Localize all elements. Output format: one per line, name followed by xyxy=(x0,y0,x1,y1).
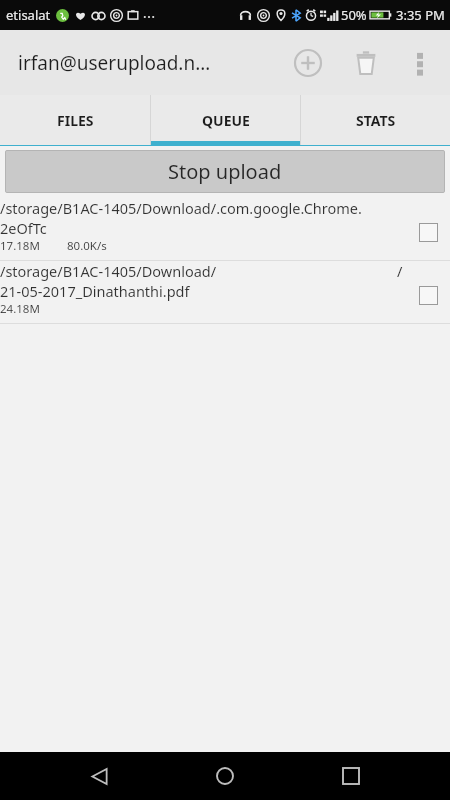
button[interactable]: Select item xyxy=(406,261,450,323)
staticText: irfan@userupload.n… xyxy=(18,50,211,76)
button[interactable]: Stop upload xyxy=(5,150,445,193)
staticText: FILES xyxy=(57,111,94,130)
staticText: STATS xyxy=(356,111,396,130)
staticText: etisalat xyxy=(6,6,51,24)
button[interactable]: Home xyxy=(198,752,252,800)
staticText: 17.18M xyxy=(0,238,40,254)
button[interactable]: Delete xyxy=(342,39,390,87)
staticText: Stop upload xyxy=(168,158,282,185)
staticText: 80.0K/s xyxy=(67,238,107,254)
button[interactable]: STATS xyxy=(301,95,450,145)
staticText: 21-05-2017_Dinathanthi.pdf xyxy=(0,281,190,301)
staticText: /storage/B1AC-1405/Download/ xyxy=(0,261,397,281)
staticText: /storage/B1AC-1405/Download/.com.google.… xyxy=(0,198,406,218)
button[interactable]: Back xyxy=(72,752,126,800)
staticText: 3:35 PM xyxy=(396,6,445,24)
button[interactable]: More options xyxy=(396,39,444,87)
button[interactable]: /storage/B1AC-1405/Download/.com.google.… xyxy=(0,198,450,260)
button[interactable]: /storage/B1AC-1405/Download/ xyxy=(0,261,450,323)
staticText: QUEUE xyxy=(202,111,250,130)
button[interactable]: QUEUE xyxy=(151,95,300,145)
button[interactable]: Select item xyxy=(406,198,450,260)
staticText: / xyxy=(397,261,403,281)
button[interactable]: Add upload xyxy=(284,39,332,87)
staticText: 2eOfTc xyxy=(0,218,47,238)
staticText: 50% xyxy=(341,6,367,24)
button[interactable]: FILES xyxy=(0,95,150,145)
staticText: 24.18M xyxy=(0,301,40,317)
button[interactable]: Recent apps xyxy=(324,752,378,800)
